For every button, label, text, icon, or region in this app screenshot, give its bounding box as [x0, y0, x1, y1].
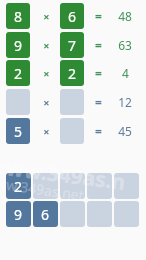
staticText: 4	[122, 65, 129, 81]
staticText: =	[95, 94, 102, 110]
button[interactable]: 2	[6, 173, 31, 199]
button[interactable]: first factor	[6, 60, 30, 86]
staticText: www.349as.net	[0, 172, 86, 205]
staticText: www.349as.net	[0, 151, 135, 199]
button[interactable]: first factor	[6, 118, 30, 144]
button[interactable]: empty key	[114, 201, 139, 227]
button[interactable]: empty key	[87, 201, 112, 227]
staticText: ×	[43, 95, 50, 110]
staticText: 2	[14, 177, 23, 196]
staticText: =	[95, 65, 102, 81]
staticText: =	[95, 123, 102, 139]
staticText: ×	[43, 38, 50, 53]
button[interactable]: empty key	[114, 173, 139, 199]
button[interactable]: second factor	[60, 118, 84, 144]
staticText: 5	[14, 122, 23, 141]
staticText: 8	[14, 7, 23, 26]
staticText: =	[95, 37, 102, 53]
button[interactable]: 6	[33, 201, 58, 227]
staticText: 9	[14, 205, 23, 224]
staticText: 2	[14, 64, 23, 83]
staticText: 63	[118, 37, 132, 53]
button[interactable]: first factor	[6, 32, 30, 58]
button[interactable]: empty key	[60, 201, 85, 227]
button[interactable]: empty key	[87, 173, 112, 199]
button[interactable]: second factor	[60, 3, 84, 29]
button[interactable]: empty key	[33, 173, 58, 199]
staticText: 6	[68, 7, 77, 26]
button[interactable]: second factor	[60, 60, 84, 86]
button[interactable]: first factor	[6, 3, 30, 29]
staticText: 9	[14, 36, 23, 55]
button[interactable]: second factor	[60, 89, 84, 115]
staticText: 48	[118, 8, 132, 24]
staticText: 45	[118, 123, 132, 139]
staticText: 12	[118, 94, 132, 110]
button[interactable]: second factor	[60, 32, 84, 58]
staticText: 7	[68, 36, 77, 55]
button[interactable]: 9	[6, 201, 31, 227]
staticText: ×	[43, 66, 50, 81]
staticText: =	[95, 8, 102, 24]
staticText: ×	[43, 9, 50, 24]
staticText: 2	[68, 64, 77, 83]
button[interactable]: empty key	[60, 173, 85, 199]
staticText: 6	[41, 205, 50, 224]
staticText: ×	[43, 124, 50, 139]
button[interactable]: first factor	[6, 89, 30, 115]
